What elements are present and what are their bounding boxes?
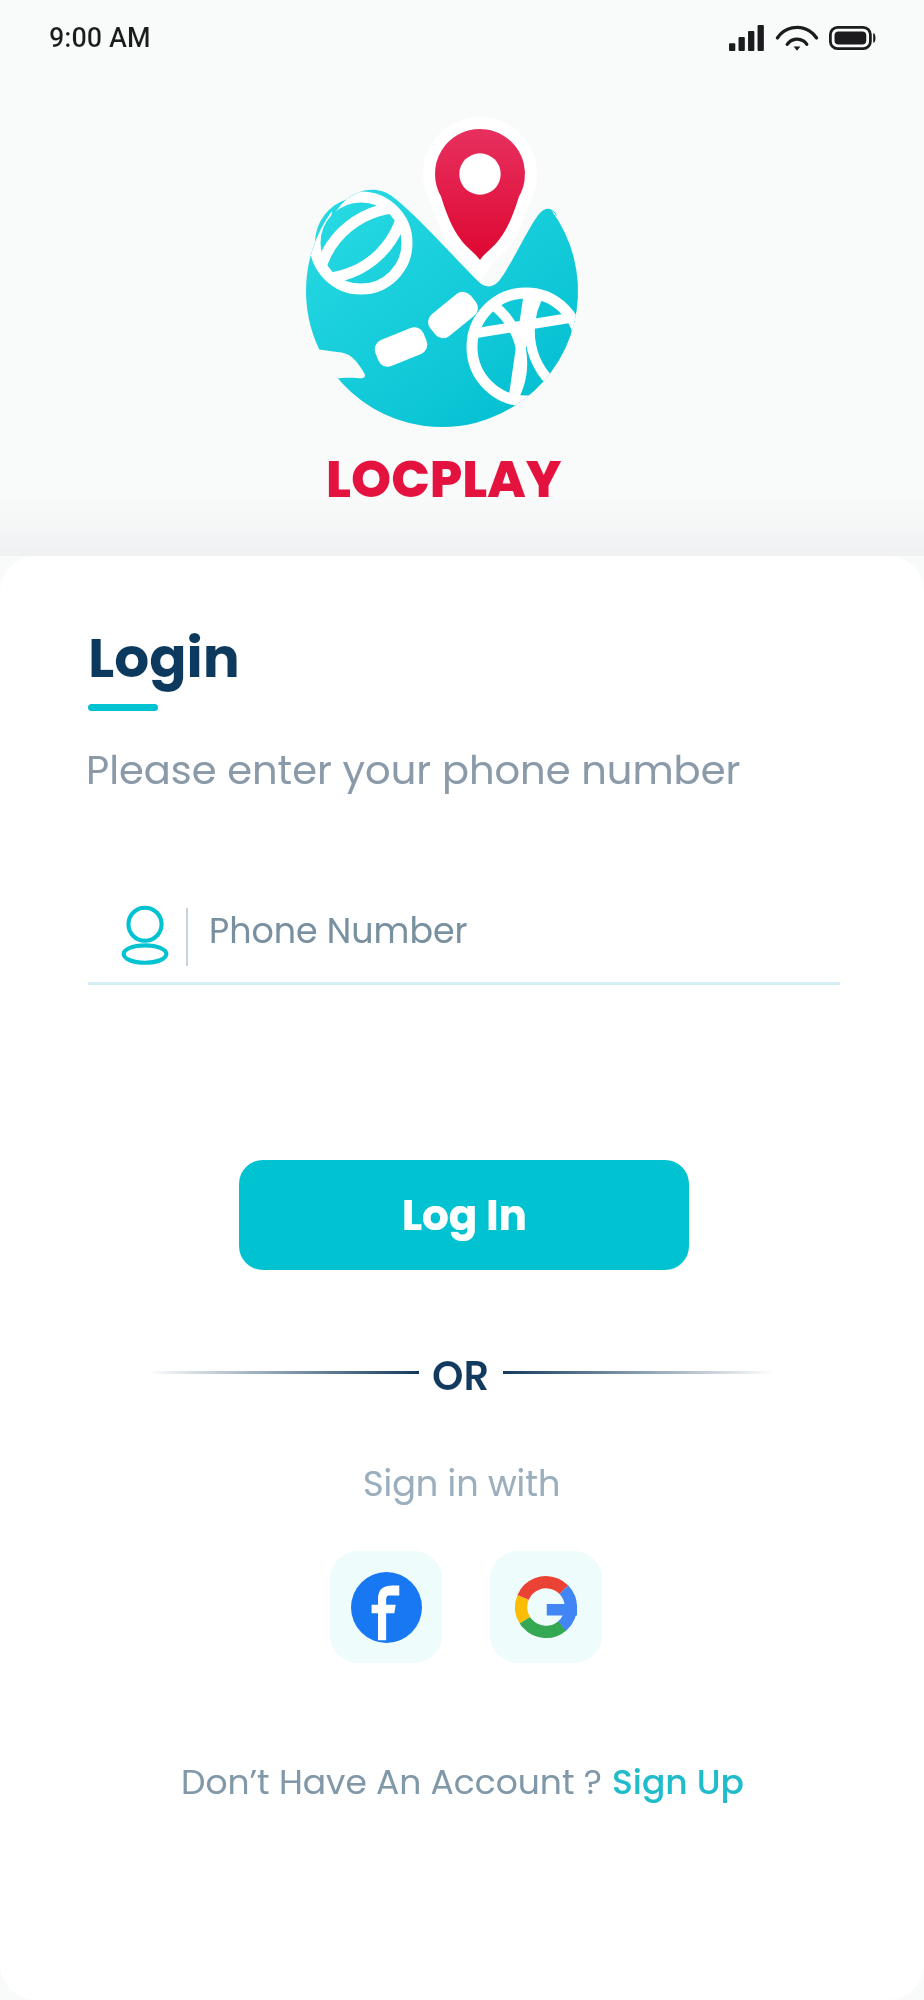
staticText: Sign in with [363,1459,561,1508]
staticText: Phone Number [209,906,468,955]
staticText: Don’t Have An Account ? [181,1758,612,1806]
button[interactable]: Sign in with Google [490,1551,602,1663]
staticText: OR [432,1348,490,1398]
staticText: Please enter your phone number [86,742,741,798]
button[interactable]: Sign Up [612,1758,744,1806]
staticText: Sign Up [612,1758,744,1806]
staticText: LOCPLAY [326,443,562,514]
button[interactable]: Sign in with Facebook [330,1551,442,1663]
staticText: Log In [402,1186,527,1245]
button[interactable]: Log In [239,1160,689,1270]
staticText: 9:00 AM [49,22,151,54]
staticText: Login [88,619,240,696]
